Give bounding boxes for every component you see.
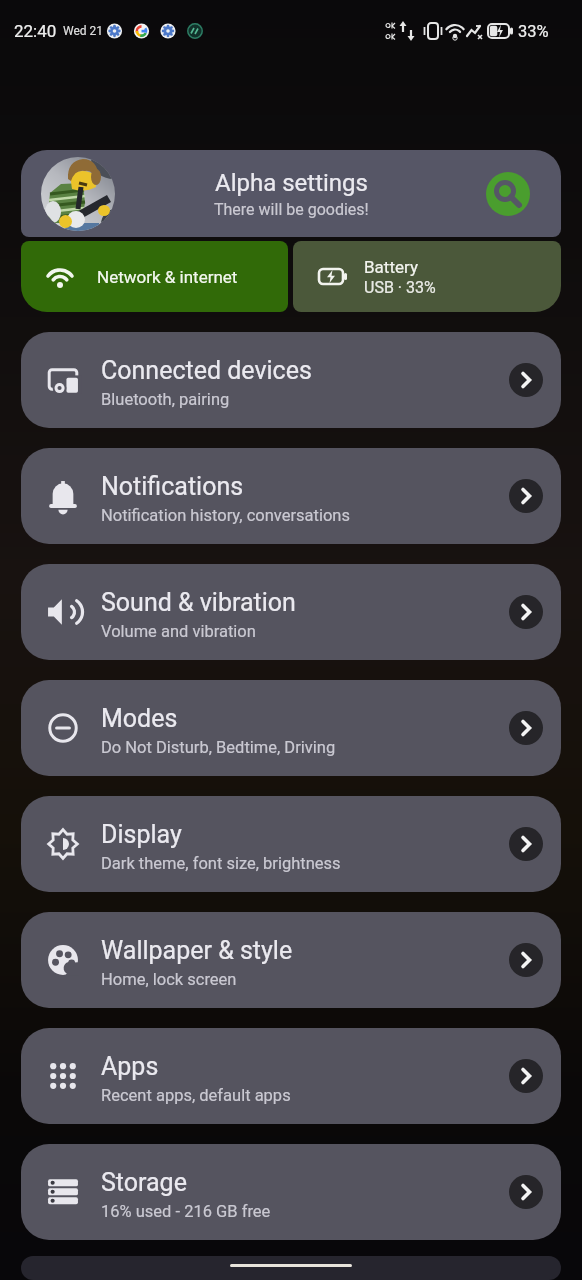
button[interactable]: Modes bbox=[21, 680, 561, 776]
button[interactable]: Apps bbox=[21, 1028, 561, 1124]
staticText: Do Not Disturb, Bedtime, Driving bbox=[101, 738, 336, 757]
staticText: Wed 21 bbox=[63, 24, 104, 38]
staticText: Bluetooth, pairing bbox=[101, 390, 230, 409]
staticText: Storage bbox=[101, 1168, 187, 1197]
staticText: Alpha settings bbox=[215, 169, 368, 197]
staticText: Home, lock screen bbox=[101, 970, 237, 989]
staticText: Sound & vibration bbox=[101, 588, 296, 617]
staticText: Battery bbox=[364, 257, 418, 277]
button[interactable]: Notifications bbox=[21, 448, 561, 544]
button[interactable] bbox=[486, 172, 530, 216]
staticText: Modes bbox=[101, 704, 178, 733]
staticText: 16% used - 216 GB free bbox=[101, 1202, 271, 1221]
staticText: Wallpaper & style bbox=[101, 936, 293, 965]
staticText: 33% bbox=[518, 22, 549, 41]
staticText: Notification history, conversations bbox=[101, 506, 350, 525]
staticText: Dark theme, font size, brightness bbox=[101, 854, 341, 873]
button[interactable]: Sound & vibration bbox=[21, 564, 561, 660]
staticText: Recent apps, default apps bbox=[101, 1086, 291, 1105]
staticText: Notifications bbox=[101, 472, 244, 501]
button[interactable]: Alpha settings bbox=[21, 150, 561, 237]
staticText: Volume and vibration bbox=[101, 622, 256, 641]
button[interactable] bbox=[21, 1256, 561, 1280]
button[interactable]: Battery bbox=[293, 241, 561, 312]
button[interactable]: Storage bbox=[21, 1144, 561, 1240]
staticText: Connected devices bbox=[101, 356, 312, 385]
button[interactable]: Network & internet bbox=[21, 241, 288, 312]
button[interactable]: Display bbox=[21, 796, 561, 892]
staticText: USB · 33% bbox=[364, 278, 436, 297]
staticText: Apps bbox=[101, 1052, 159, 1081]
button[interactable]: Connected devices bbox=[21, 332, 561, 428]
button[interactable]: Wallpaper & style bbox=[21, 912, 561, 1008]
staticText: There will be goodies! bbox=[214, 200, 369, 219]
staticText: Display bbox=[101, 820, 182, 849]
staticText: 22:40 bbox=[14, 21, 57, 41]
staticText: Network & internet bbox=[97, 267, 238, 287]
